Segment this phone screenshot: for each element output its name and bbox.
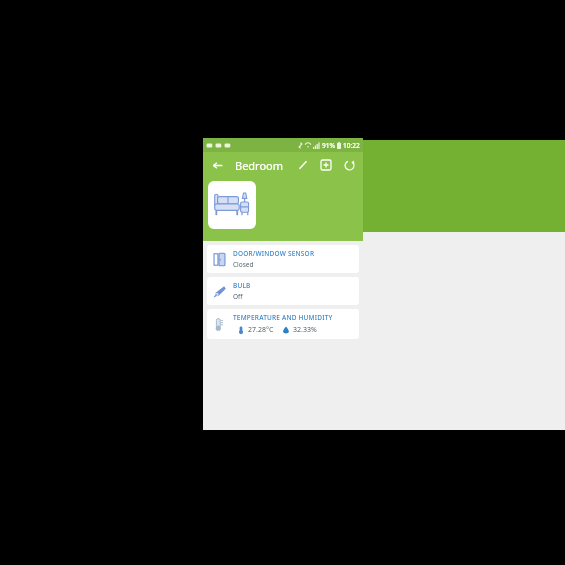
button[interactable]: DOOR/WINDOW SENSOR [207,245,359,273]
staticText: Off [233,292,243,301]
staticText: DOOR/WINDOW SENSOR [233,249,315,258]
staticText: BULB [233,281,251,290]
button[interactable]: TEMPERATURE AND HUMIDITY [207,309,359,339]
button[interactable]: Add [317,156,335,174]
staticText: 27.28°C [248,325,274,335]
button[interactable]: Refresh [340,156,358,174]
staticText: 91% [322,141,335,150]
button[interactable]: Edit [294,156,312,174]
staticText: 10:22 [343,141,360,150]
staticText: 32.33% [293,325,317,335]
staticText: Closed [233,260,254,269]
button[interactable]: Back [208,156,226,174]
button[interactable]: Bedroom image [208,181,256,229]
staticText: TEMPERATURE AND HUMIDITY [233,313,333,322]
button[interactable]: BULB [207,277,359,305]
staticText: Bedroom [235,158,284,173]
